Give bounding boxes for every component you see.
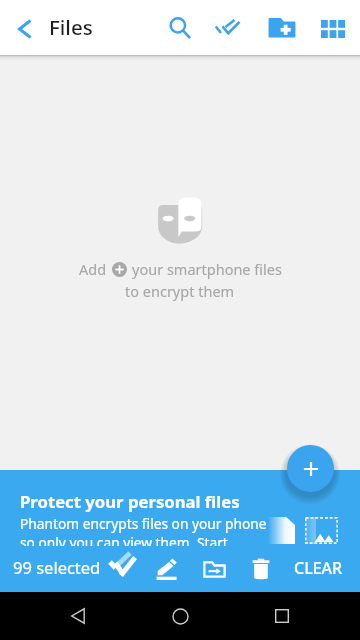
staticText: to encrypt them — [125, 281, 235, 301]
button[interactable]: CLEAR — [285, 546, 351, 592]
button[interactable]: Delete — [238, 546, 284, 592]
staticText: Add — [79, 259, 107, 279]
staticText: Phantom encrypts files on your phone so … — [20, 514, 267, 546]
button[interactable]: Back — [54, 592, 102, 640]
button[interactable]: Search — [156, 4, 204, 52]
button[interactable]: Add — [287, 445, 334, 492]
button[interactable]: Move — [191, 546, 237, 592]
staticText: your smartphone files — [132, 259, 282, 279]
staticText: CLEAR — [294, 557, 343, 579]
button[interactable]: Select all — [206, 4, 254, 52]
staticText: Files — [49, 13, 93, 41]
staticText: Protect your personal files — [20, 490, 240, 513]
staticText: 99 selected — [13, 556, 101, 578]
button[interactable]: New folder — [258, 4, 306, 52]
button[interactable]: Home — [156, 592, 204, 640]
button[interactable]: Back — [1, 5, 49, 53]
button[interactable]: Rename — [144, 546, 190, 592]
button[interactable]: Recents — [258, 592, 306, 640]
button[interactable]: Grid view — [309, 5, 357, 53]
button[interactable]: Select all — [99, 546, 145, 592]
